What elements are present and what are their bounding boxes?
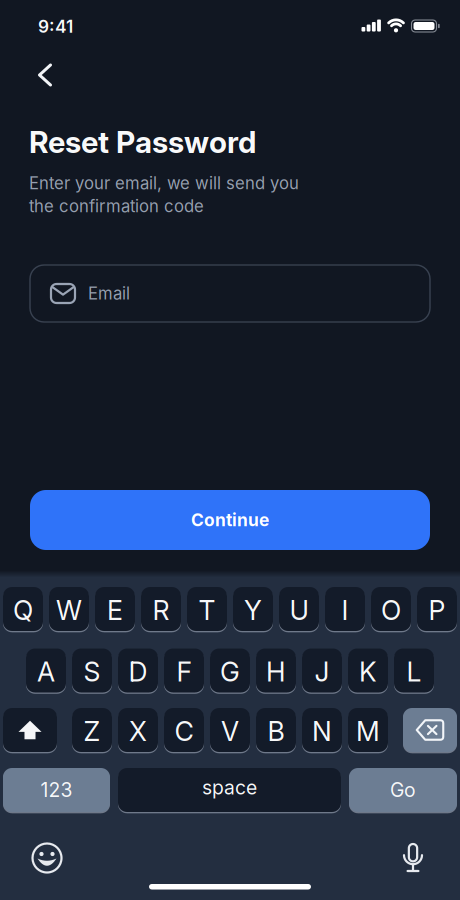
button[interactable]: Back xyxy=(23,53,67,97)
staticText: H xyxy=(266,656,286,688)
staticText: Q xyxy=(13,594,33,626)
button[interactable]: W xyxy=(49,587,89,631)
button[interactable]: V xyxy=(210,708,250,752)
button[interactable]: K xyxy=(348,648,388,692)
staticText: O xyxy=(381,594,401,626)
button[interactable]: R xyxy=(141,587,181,631)
staticText: B xyxy=(267,715,284,747)
staticText: Enter your email, we will send you the c… xyxy=(29,173,299,216)
staticText: R xyxy=(152,594,169,626)
button[interactable]: H xyxy=(256,648,296,692)
button[interactable]: O xyxy=(371,587,411,631)
staticText: W xyxy=(56,594,82,626)
staticText: Email xyxy=(88,283,130,304)
staticText: Continue xyxy=(191,509,269,530)
staticText: P xyxy=(428,594,445,626)
staticText: T xyxy=(198,594,215,626)
staticText: U xyxy=(289,594,308,626)
button[interactable]: J xyxy=(302,648,342,692)
button[interactable]: Email xyxy=(30,265,430,322)
staticText: D xyxy=(128,656,147,688)
button[interactable]: X xyxy=(118,708,158,752)
button[interactable]: space xyxy=(118,768,341,812)
button[interactable]: 123 xyxy=(3,768,110,812)
button[interactable]: U xyxy=(279,587,319,631)
button[interactable]: N xyxy=(302,708,342,752)
button[interactable]: Z xyxy=(72,708,112,752)
staticText: Z xyxy=(83,715,100,747)
staticText: L xyxy=(406,656,421,688)
button[interactable]: Shift xyxy=(3,708,57,752)
button[interactable]: F xyxy=(164,648,204,692)
staticText: C xyxy=(174,715,193,747)
button[interactable]: Go xyxy=(349,768,457,812)
staticText: space xyxy=(202,776,257,799)
button[interactable]: Continue xyxy=(30,490,430,550)
button[interactable]: L xyxy=(394,648,434,692)
button[interactable]: S xyxy=(72,648,112,692)
staticText: S xyxy=(83,656,100,688)
button[interactable]: Y xyxy=(233,587,273,631)
button[interactable]: Q xyxy=(3,587,43,631)
button[interactable]: G xyxy=(210,648,250,692)
staticText: X xyxy=(129,715,147,747)
button[interactable]: M xyxy=(348,708,388,752)
staticText: K xyxy=(359,656,377,688)
button[interactable]: Dictate xyxy=(391,836,435,880)
staticText: 123 xyxy=(40,778,72,802)
button[interactable]: I xyxy=(325,587,365,631)
button[interactable]: A xyxy=(26,648,66,692)
staticText: F xyxy=(176,656,191,688)
button[interactable]: B xyxy=(256,708,296,752)
staticText: N xyxy=(312,715,332,747)
staticText: I xyxy=(341,594,348,626)
button[interactable]: T xyxy=(187,587,227,631)
staticText: G xyxy=(220,656,240,688)
staticText: Y xyxy=(244,594,262,626)
button[interactable]: C xyxy=(164,708,204,752)
button[interactable]: Delete xyxy=(403,708,457,752)
staticText: E xyxy=(107,594,123,626)
button[interactable]: E xyxy=(95,587,135,631)
staticText: Go xyxy=(390,778,416,802)
staticText: Reset Password xyxy=(29,124,256,160)
button[interactable]: D xyxy=(118,648,158,692)
button[interactable]: P xyxy=(417,587,457,631)
staticText: J xyxy=(314,656,329,688)
staticText: M xyxy=(356,715,380,747)
button[interactable]: Emoji xyxy=(25,836,69,880)
staticText: 9:41 xyxy=(38,16,73,37)
staticText: V xyxy=(221,715,239,747)
staticText: A xyxy=(37,656,55,688)
